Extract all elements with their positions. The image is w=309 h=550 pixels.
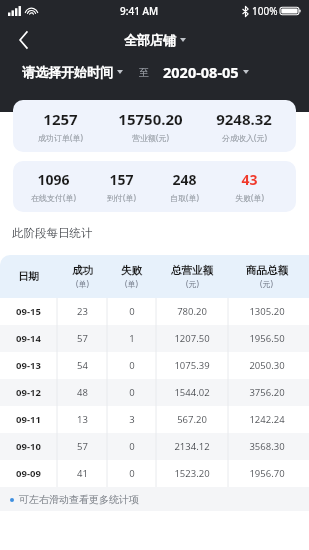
staticText: 23: [77, 305, 88, 318]
staticText: 15750.20: [118, 109, 183, 129]
button[interactable]: 09-13: [0, 352, 309, 379]
staticText: 1: [129, 332, 135, 345]
staticText: 09-14: [16, 332, 41, 345]
button[interactable]: 全部店铺: [124, 32, 186, 48]
button[interactable]: 09-14: [0, 325, 309, 352]
button[interactable]: 09-10: [0, 433, 309, 460]
staticText: 567.20: [177, 413, 207, 426]
staticText: 总营业额: [171, 264, 213, 277]
staticText: 0: [129, 467, 135, 480]
button[interactable]: 2020-08-05: [163, 62, 249, 82]
staticText: 9:41 AM: [120, 4, 159, 18]
staticText: 09-10: [16, 440, 41, 453]
staticText: 09-12: [16, 386, 41, 399]
staticText: 3: [129, 413, 135, 426]
staticText: (元): [186, 278, 199, 289]
staticText: 09-11: [16, 413, 41, 426]
staticText: 商品总额: [246, 264, 288, 277]
staticText: 3756.20: [249, 386, 285, 399]
staticText: 48: [77, 386, 88, 399]
staticText: 43: [241, 170, 258, 189]
staticText: 1305.20: [249, 305, 285, 318]
staticText: 1096: [37, 170, 70, 189]
staticText: 1075.39: [174, 359, 210, 372]
staticText: 营业额(元): [132, 132, 169, 143]
staticText: 自取(单): [170, 192, 199, 203]
staticText: 1523.20: [174, 467, 210, 480]
staticText: 2020-08-05: [163, 62, 239, 82]
staticText: 2134.12: [174, 440, 210, 453]
staticText: 0: [129, 359, 135, 372]
button[interactable]: 1096: [13, 161, 296, 212]
staticText: 此阶段每日统计: [12, 226, 93, 240]
staticText: 成功订单(单): [38, 132, 83, 143]
staticText: 09-15: [16, 305, 41, 318]
staticText: 1956.50: [249, 332, 285, 345]
staticText: 失败(单): [235, 192, 264, 203]
staticText: 57: [77, 332, 88, 345]
staticText: 9248.32: [216, 109, 272, 129]
button[interactable]: 09-12: [0, 379, 309, 406]
staticText: 到付(单): [107, 192, 136, 203]
staticText: 100%: [252, 4, 278, 18]
staticText: 57: [77, 440, 88, 453]
button[interactable]: Back: [6, 24, 40, 56]
staticText: 0: [129, 386, 135, 399]
staticText: 1257: [43, 109, 78, 129]
staticText: (单): [125, 278, 138, 289]
staticText: 日期: [18, 270, 39, 283]
staticText: 2050.30: [249, 359, 285, 372]
staticText: 54: [77, 359, 88, 372]
staticText: 至: [139, 66, 149, 79]
staticText: 成功: [72, 264, 93, 277]
staticText: 请选择开始时间: [22, 64, 113, 80]
staticText: 全部店铺: [124, 32, 176, 48]
button[interactable]: 请选择开始时间: [22, 64, 123, 80]
button[interactable]: 09-11: [0, 406, 309, 433]
button[interactable]: 09-09: [0, 460, 309, 487]
staticText: (元): [260, 278, 273, 289]
staticText: 41: [77, 467, 88, 480]
staticText: 780.20: [177, 305, 207, 318]
staticText: 13: [77, 413, 88, 426]
staticText: 1956.70: [249, 467, 285, 480]
staticText: (单): [76, 278, 89, 289]
staticText: 248: [172, 170, 197, 189]
staticText: 1544.02: [174, 386, 210, 399]
button[interactable]: 可左右滑动查看更多统计项: [0, 487, 309, 511]
staticText: 在线支付(单): [31, 192, 76, 203]
staticText: 0: [129, 440, 135, 453]
staticText: 分成收入(元): [222, 132, 267, 143]
staticText: 157: [109, 170, 134, 189]
staticText: 可左右滑动查看更多统计项: [19, 493, 139, 506]
button[interactable]: 09-15: [0, 298, 309, 325]
button[interactable]: 1257: [13, 100, 296, 152]
staticText: 1242.24: [249, 413, 285, 426]
staticText: 1207.50: [174, 332, 210, 345]
staticText: 失败: [121, 264, 142, 277]
staticText: 3568.30: [249, 440, 285, 453]
staticText: 09-13: [16, 359, 41, 372]
staticText: 0: [129, 305, 135, 318]
staticText: 09-09: [16, 467, 41, 480]
